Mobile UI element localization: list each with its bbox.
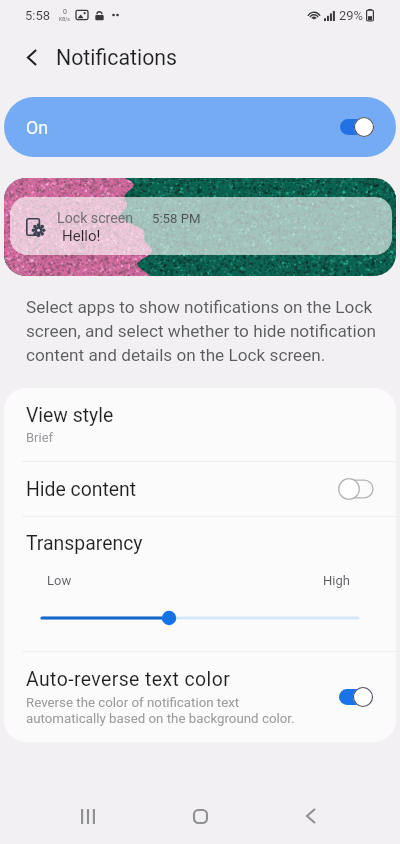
button[interactable]: Back xyxy=(14,42,50,72)
staticText: Lock screen xyxy=(57,210,134,227)
staticText: 29% xyxy=(339,8,364,23)
button[interactable] xyxy=(42,606,358,630)
staticText: High xyxy=(323,573,350,588)
staticText: Select apps to show notifications on the… xyxy=(26,297,384,365)
staticText: View style xyxy=(26,404,114,427)
staticText: Brief xyxy=(26,430,54,445)
staticText: Low xyxy=(47,573,72,588)
staticText: 5:58 xyxy=(25,8,51,23)
staticText: Transparency xyxy=(26,532,143,555)
staticText: 5:58 PM xyxy=(152,211,201,226)
staticText: Hello! xyxy=(62,227,101,245)
button[interactable]: Lock screen xyxy=(4,178,396,276)
button[interactable]: Home xyxy=(162,792,238,844)
staticText: KB/s xyxy=(59,16,70,22)
staticText: On xyxy=(26,117,49,138)
staticText: Reverse the color of notification text a… xyxy=(26,695,309,726)
staticText: Hide content xyxy=(26,478,137,501)
button[interactable]: Back xyxy=(273,792,349,844)
button[interactable]: Hide content xyxy=(4,462,396,516)
button[interactable]: Auto-reverse text color xyxy=(4,652,396,742)
staticText: Auto-reverse text color xyxy=(26,668,231,691)
button[interactable]: Recents xyxy=(50,792,126,844)
button[interactable]: View style xyxy=(4,388,396,461)
staticText: Notifications xyxy=(56,45,178,70)
staticText: 0 xyxy=(63,8,67,16)
button[interactable]: On xyxy=(4,97,396,157)
